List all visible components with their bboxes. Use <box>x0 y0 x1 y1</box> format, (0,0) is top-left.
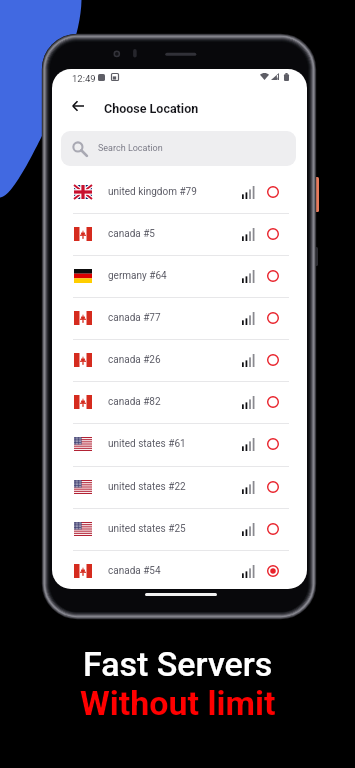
staticText: canada #82 <box>108 396 161 408</box>
staticText: united states #61 <box>108 438 186 450</box>
staticText: united states #22 <box>108 481 186 493</box>
button[interactable]: Back <box>65 93 91 119</box>
staticText: germany #64 <box>108 270 167 282</box>
staticText: 12:49 <box>72 73 96 84</box>
button[interactable]: canada #26 <box>52 339 307 381</box>
button[interactable]: canada #77 <box>52 297 307 339</box>
button[interactable]: germany #64 <box>52 255 307 297</box>
staticText: Choose Location <box>104 101 199 116</box>
staticText: Without limit <box>80 683 276 723</box>
button[interactable]: united kingdom #79 <box>52 171 307 213</box>
staticText: canada #5 <box>108 228 155 240</box>
staticText: united states #25 <box>108 523 186 535</box>
button[interactable]: united states #25 <box>52 508 307 550</box>
button[interactable]: canada #54 <box>52 550 307 589</box>
staticText: canada #26 <box>108 354 161 366</box>
staticText: united kingdom #79 <box>108 186 197 198</box>
button[interactable]: canada #82 <box>52 381 307 423</box>
button[interactable]: canada #5 <box>52 213 307 255</box>
button[interactable]: Search Location <box>61 131 296 166</box>
staticText: Fast Servers <box>83 644 273 684</box>
button[interactable]: united states #22 <box>52 466 307 508</box>
button[interactable]: united states #61 <box>52 423 307 465</box>
staticText: Search Location <box>98 143 163 154</box>
staticText: canada #77 <box>108 312 161 324</box>
staticText: canada #54 <box>108 565 161 577</box>
